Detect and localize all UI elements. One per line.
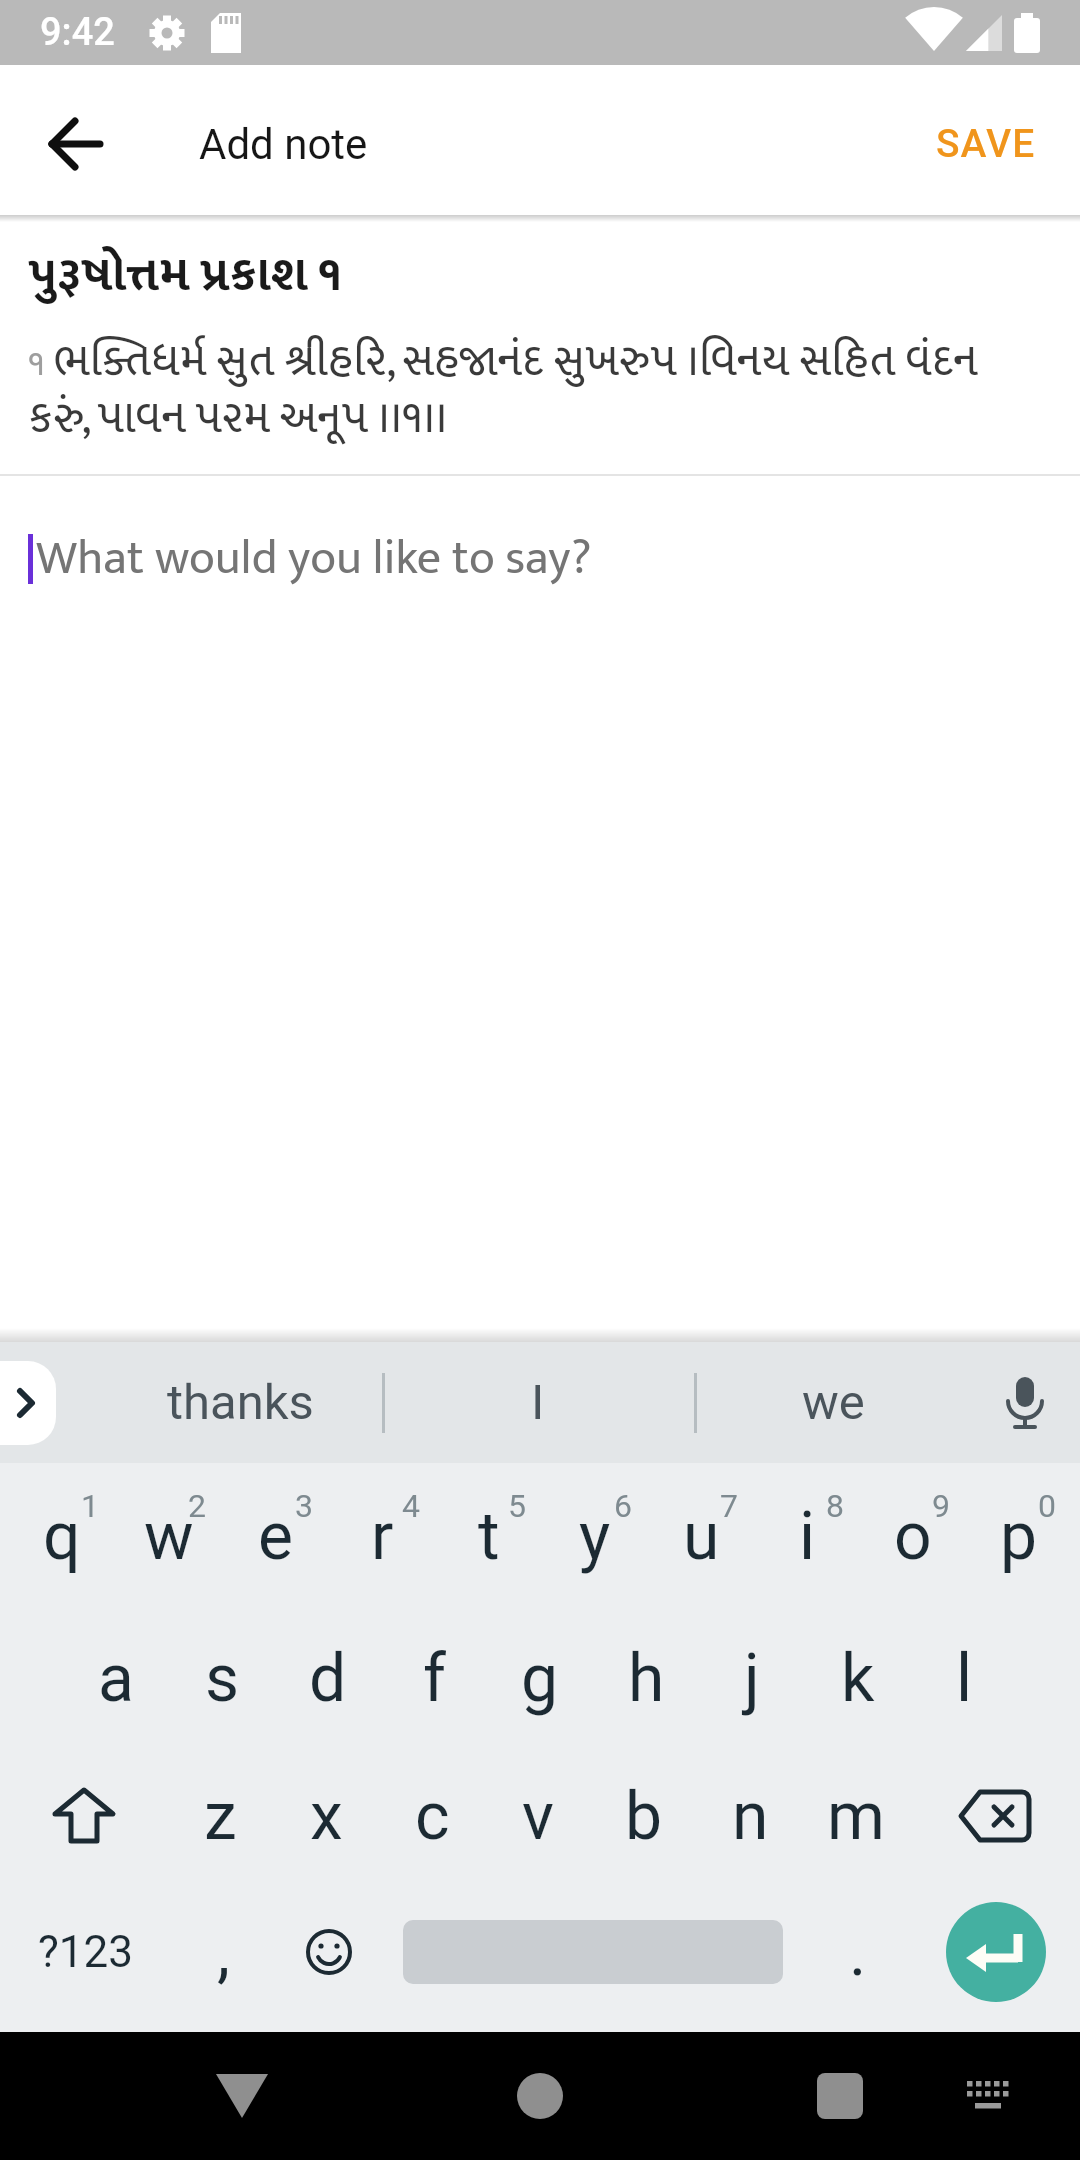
staticText: ?123 xyxy=(38,1926,133,1978)
staticText: i xyxy=(799,1498,816,1575)
button[interactable]: v xyxy=(485,1747,591,1885)
staticText: , xyxy=(217,1914,230,1991)
button[interactable]: x xyxy=(273,1747,379,1885)
staticText: c xyxy=(415,1778,450,1855)
staticText: 6 xyxy=(614,1487,632,1525)
button[interactable]: m xyxy=(803,1747,909,1885)
staticText: 2 xyxy=(188,1487,206,1525)
staticText: 4 xyxy=(402,1487,420,1525)
button[interactable] xyxy=(788,2044,892,2148)
button[interactable]: d xyxy=(275,1609,381,1747)
staticText: 8 xyxy=(826,1487,844,1525)
button[interactable] xyxy=(946,1902,1046,2002)
staticText: z xyxy=(204,1778,237,1855)
button[interactable] xyxy=(0,1361,56,1445)
staticText: h xyxy=(628,1640,665,1717)
button[interactable]: e xyxy=(222,1463,329,1609)
staticText: 1 xyxy=(81,1487,99,1525)
staticText: p xyxy=(1000,1498,1038,1575)
button[interactable]: g xyxy=(487,1609,593,1747)
button[interactable] xyxy=(488,2044,592,2148)
staticText: Add note xyxy=(199,120,368,169)
button[interactable]: we xyxy=(713,1342,953,1463)
staticText: thanks xyxy=(167,1374,314,1431)
button[interactable]: SAVE xyxy=(922,107,1050,181)
button[interactable]: u xyxy=(648,1463,754,1609)
button[interactable]: c xyxy=(379,1747,485,1885)
button[interactable]: b xyxy=(591,1747,697,1885)
staticText: e xyxy=(258,1498,293,1575)
button[interactable]: thanks xyxy=(120,1342,360,1463)
button[interactable]: a xyxy=(63,1609,169,1747)
staticText: o xyxy=(894,1498,932,1575)
button[interactable]: l xyxy=(911,1609,1017,1747)
button[interactable]: k xyxy=(805,1609,911,1747)
staticText: q xyxy=(43,1498,81,1575)
button[interactable]: . xyxy=(804,1885,912,2019)
button[interactable] xyxy=(276,1885,382,2019)
button[interactable]: ?123 xyxy=(0,1885,170,2019)
button[interactable] xyxy=(190,2044,294,2148)
staticText: f xyxy=(423,1640,446,1717)
staticText: SAVE xyxy=(936,121,1036,167)
staticText: t xyxy=(478,1498,500,1575)
button[interactable]: q xyxy=(8,1463,115,1609)
button[interactable]: n xyxy=(697,1747,803,1885)
button[interactable] xyxy=(40,108,112,180)
button[interactable] xyxy=(985,1342,1065,1463)
staticText: r xyxy=(371,1498,394,1575)
staticText: k xyxy=(841,1640,875,1717)
staticText: 7 xyxy=(720,1487,738,1525)
button[interactable]: , xyxy=(170,1885,276,2019)
staticText: b xyxy=(625,1778,663,1855)
staticText: 0 xyxy=(1038,1487,1056,1525)
staticText: x xyxy=(310,1778,343,1855)
button[interactable]: p xyxy=(966,1463,1072,1609)
staticText: d xyxy=(309,1640,347,1717)
button[interactable] xyxy=(0,1747,167,1885)
button[interactable]: y xyxy=(542,1463,648,1609)
staticText: પુરૂષોત્તમ પ્રકાશ ૧ xyxy=(28,236,342,316)
button[interactable]: r xyxy=(329,1463,436,1609)
staticText: g xyxy=(521,1640,559,1717)
staticText: j xyxy=(744,1640,760,1717)
button[interactable]: z xyxy=(167,1747,273,1885)
staticText: l xyxy=(956,1640,973,1717)
staticText: a xyxy=(98,1640,134,1717)
staticText: . xyxy=(849,1914,867,1991)
staticText: we xyxy=(802,1374,865,1431)
staticText: 3 xyxy=(295,1487,313,1525)
staticText: What would you like to say? xyxy=(36,519,592,599)
staticText: 5 xyxy=(508,1487,526,1525)
button[interactable] xyxy=(909,1747,1080,1885)
button[interactable]: What would you like to say? xyxy=(28,519,1080,599)
button[interactable]: w xyxy=(115,1463,222,1609)
button[interactable] xyxy=(382,1885,804,2019)
staticText: w xyxy=(144,1498,194,1575)
button[interactable]: f xyxy=(381,1609,487,1747)
staticText: n xyxy=(732,1778,769,1855)
staticText: y xyxy=(579,1498,611,1575)
button[interactable]: I xyxy=(420,1342,655,1463)
button[interactable]: o xyxy=(860,1463,966,1609)
button[interactable]: i xyxy=(754,1463,860,1609)
button[interactable]: t xyxy=(436,1463,542,1609)
button[interactable]: s xyxy=(169,1609,275,1747)
button[interactable]: h xyxy=(593,1609,699,1747)
staticText: s xyxy=(205,1640,240,1717)
staticText: 9 xyxy=(932,1487,950,1525)
staticText: 9:42 xyxy=(40,10,115,55)
staticText: I xyxy=(531,1374,545,1431)
button[interactable] xyxy=(938,2046,1038,2146)
staticText: ૧ ભક્તિધર્મ સુત શ્રીહરિ, સહજાનંદ સુખરુપ … xyxy=(28,324,978,456)
button[interactable]: j xyxy=(699,1609,805,1747)
staticText: m xyxy=(827,1778,885,1855)
staticText: v xyxy=(522,1778,554,1855)
staticText: u xyxy=(683,1498,720,1575)
